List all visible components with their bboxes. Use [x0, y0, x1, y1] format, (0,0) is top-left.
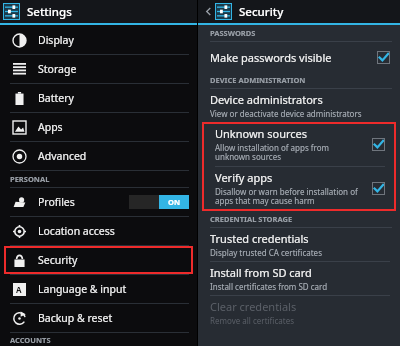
staticText: ON	[168, 197, 181, 207]
button[interactable]: Storage	[0, 55, 197, 83]
staticText: Display trusted CA certificates	[210, 247, 322, 258]
staticText: Unknown sources	[215, 126, 308, 141]
button[interactable]: Settings	[0, 0, 197, 23]
button[interactable]: Clear credentials	[198, 296, 400, 329]
staticText: Verify apps	[215, 170, 273, 185]
button[interactable]: Install from SD card	[198, 262, 400, 295]
staticText: Clear credentials	[210, 299, 297, 314]
staticText: Language & input	[38, 282, 127, 296]
staticText: Make passwords visible	[210, 50, 332, 65]
staticText: Display	[38, 33, 74, 47]
button[interactable]: Backup & reset	[0, 304, 197, 332]
button[interactable]: Display	[0, 26, 197, 54]
button[interactable]: Verify apps	[203, 167, 395, 210]
staticText: Install certificates from SD card	[210, 281, 328, 292]
button[interactable]: Device administrators	[198, 89, 400, 122]
staticText: Security	[38, 253, 78, 267]
staticText: Apps	[38, 120, 63, 134]
button[interactable]: Advanced	[0, 142, 197, 170]
button[interactable]: Profiles	[0, 188, 197, 216]
staticText: Location access	[38, 224, 115, 238]
button[interactable]: Security	[4, 246, 193, 274]
staticText: Battery	[38, 91, 74, 105]
staticText: Install from SD card	[210, 265, 312, 280]
button[interactable]: Make passwords visible	[198, 42, 400, 72]
staticText: Security	[239, 4, 284, 20]
staticText: Backup & reset	[38, 311, 113, 325]
staticText: Profiles	[38, 195, 75, 209]
staticText: Disallow or warn before installation of …	[215, 186, 366, 207]
button[interactable]: Back	[204, 7, 213, 16]
staticText: Storage	[38, 62, 77, 76]
staticText: View or deactivate device administrators	[210, 108, 362, 119]
staticText: Trusted credentials	[210, 231, 309, 246]
staticText: PERSONAL	[10, 174, 50, 184]
staticText: Allow installation of apps from unknown …	[215, 142, 366, 163]
staticText: PASSWORDS	[210, 28, 256, 38]
staticText: A	[16, 284, 22, 295]
button[interactable]: Location access	[0, 217, 197, 245]
staticText: Advanced	[38, 149, 87, 163]
button[interactable]: A	[0, 275, 197, 303]
button[interactable]: Trusted credentials	[198, 228, 400, 261]
staticText: CREDENTIAL STORAGE	[210, 214, 293, 224]
staticText: ACCOUNTS	[10, 335, 51, 345]
button[interactable]: Back	[198, 0, 400, 23]
button[interactable]: Battery	[0, 84, 197, 112]
button[interactable]: Unknown sources	[203, 123, 395, 166]
staticText: Remove all certificates	[210, 315, 294, 326]
staticText: DEVICE ADMINISTRATION	[210, 75, 306, 85]
staticText: Device administrators	[210, 92, 323, 107]
button[interactable]: Apps	[0, 113, 197, 141]
staticText: Settings	[27, 4, 72, 20]
